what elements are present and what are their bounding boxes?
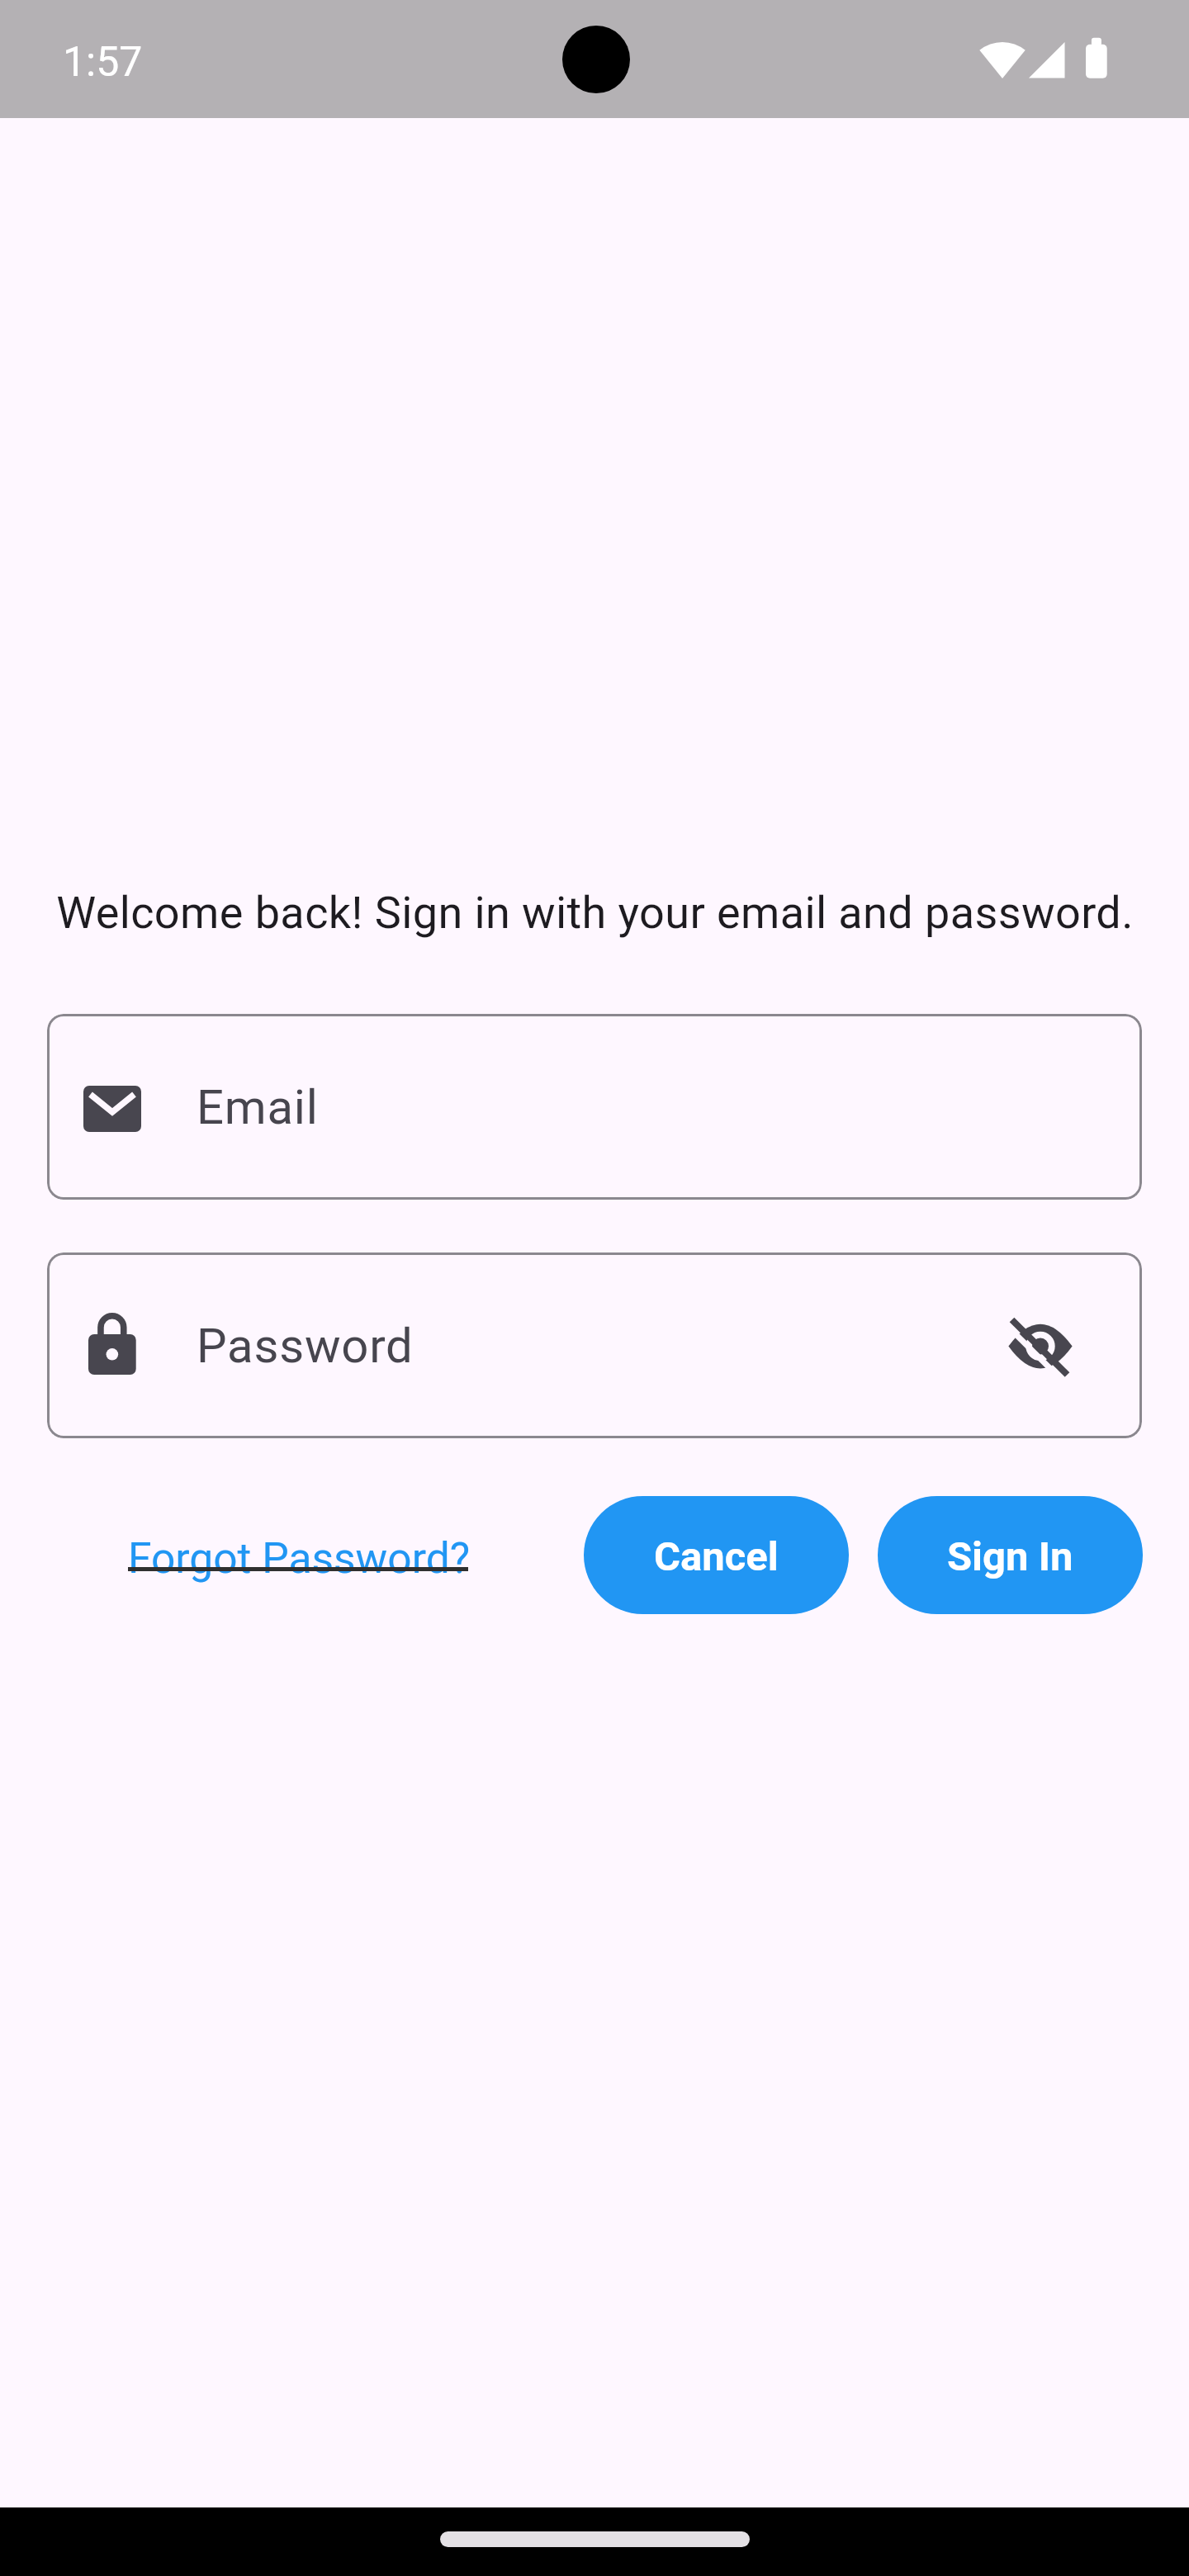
staticText: Welcome back! Sign in with your email an… [56,887,1134,939]
button[interactable]: Cancel [584,1496,849,1614]
staticText: 1:57 [63,38,143,87]
staticText: Email [197,1079,319,1135]
button[interactable]: Email [47,1014,1142,1200]
button[interactable]: Forgot Password? [126,1496,472,1614]
staticText: Password [197,1318,414,1374]
button[interactable] [980,1286,1100,1405]
staticText: Sign In [947,1533,1073,1580]
staticText: Cancel [654,1533,779,1580]
staticText: Forgot Password? [128,1533,471,1583]
button[interactable]: Password [47,1252,1142,1438]
button[interactable]: Sign In [878,1496,1143,1614]
